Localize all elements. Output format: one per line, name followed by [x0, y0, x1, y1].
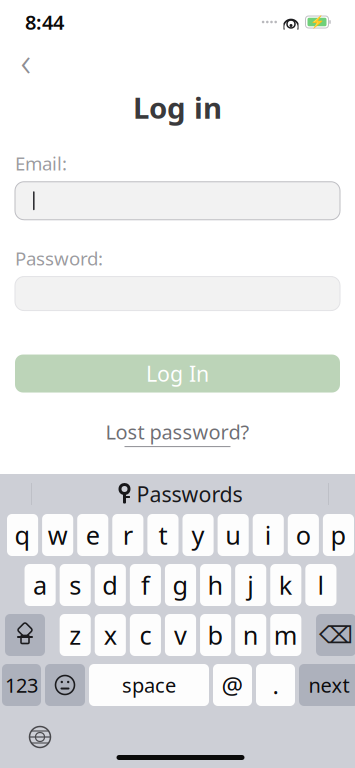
button[interactable]: w — [42, 514, 73, 556]
staticText: 8:44 — [25, 9, 64, 35]
button[interactable]: . — [256, 664, 295, 706]
staticText: l — [317, 568, 324, 602]
staticText: 123 — [5, 672, 38, 698]
staticText: n — [243, 618, 259, 652]
staticText: Lost password? — [105, 418, 249, 445]
button[interactable]: n — [235, 614, 266, 656]
button[interactable]: b — [200, 614, 231, 656]
staticText: ⌫ — [319, 621, 353, 649]
button[interactable]: f — [130, 564, 161, 606]
staticText: q — [15, 518, 31, 552]
staticText: @ — [221, 669, 243, 701]
staticText: t — [158, 518, 167, 552]
staticText: Email: — [15, 151, 67, 176]
staticText: o — [296, 518, 311, 552]
staticText: ‹ — [20, 34, 31, 87]
staticText: u — [225, 518, 241, 552]
staticText: d — [102, 568, 118, 602]
button[interactable]: v — [165, 614, 196, 656]
button[interactable]: e — [77, 514, 108, 556]
staticText: e — [86, 518, 100, 552]
staticText: Log in — [133, 88, 222, 127]
button[interactable]: Delete — [316, 614, 355, 656]
staticText: m — [274, 618, 298, 652]
staticText: h — [208, 568, 224, 602]
button[interactable]: m — [270, 614, 301, 656]
button[interactable]: a — [25, 564, 56, 606]
staticText: Passwords — [136, 480, 242, 508]
button[interactable]: x — [95, 614, 126, 656]
button[interactable]: z — [60, 614, 91, 656]
staticText: ⚡ — [309, 15, 324, 29]
staticText: z — [69, 618, 81, 652]
button[interactable]: r — [112, 514, 143, 556]
staticText: x — [104, 618, 117, 652]
button[interactable]: @ — [213, 664, 252, 706]
button[interactable]: y — [182, 514, 214, 556]
staticText: r — [123, 518, 133, 552]
staticText: v — [174, 618, 187, 652]
button[interactable]: Lost password? — [105, 418, 249, 447]
button[interactable]: o — [288, 514, 319, 556]
button[interactable]: Log In — [15, 354, 340, 392]
button[interactable]: space — [89, 664, 209, 706]
staticText: p — [330, 518, 346, 552]
staticText: c — [139, 618, 151, 652]
button[interactable]: i — [253, 514, 284, 556]
button[interactable]: s — [60, 564, 91, 606]
staticText: f — [141, 568, 150, 602]
staticText: y — [192, 518, 205, 552]
button[interactable]: Shift — [5, 614, 45, 656]
staticText: Password: — [15, 246, 103, 270]
staticText: s — [69, 568, 81, 602]
button[interactable]: Passwords — [3, 474, 355, 514]
button[interactable] — [15, 182, 340, 220]
button[interactable]: 123 — [2, 664, 41, 706]
button[interactable]: q — [7, 514, 38, 556]
staticText: Log In — [146, 359, 209, 388]
button[interactable]: k — [270, 564, 301, 606]
staticText: b — [208, 618, 224, 652]
staticText: k — [279, 568, 293, 602]
button[interactable]: d — [95, 564, 126, 606]
button[interactable]: u — [218, 514, 249, 556]
staticText: space — [122, 672, 176, 698]
button[interactable]: h — [200, 564, 231, 606]
button[interactable]: Emoji — [45, 664, 85, 706]
staticText: . — [272, 669, 278, 701]
staticText: next — [308, 672, 349, 698]
button[interactable]: g — [165, 564, 196, 606]
staticText: a — [33, 568, 47, 602]
staticText: g — [172, 568, 188, 602]
button[interactable]: Next keyboard — [18, 720, 62, 754]
staticText: w — [48, 518, 68, 552]
button[interactable]: c — [130, 614, 161, 656]
staticText: j — [247, 568, 254, 602]
button[interactable]: Back — [6, 44, 46, 78]
button[interactable]: j — [235, 564, 266, 606]
button[interactable]: next — [299, 664, 355, 706]
button[interactable]: l — [305, 564, 336, 606]
button[interactable]: p — [323, 514, 354, 556]
button[interactable]: t — [147, 514, 178, 556]
staticText: i — [265, 518, 272, 552]
